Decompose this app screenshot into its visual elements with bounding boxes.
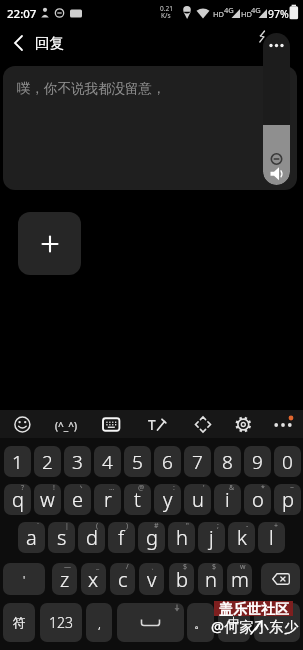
staticText: p <box>282 486 294 513</box>
button[interactable] <box>261 563 300 595</box>
staticText: 。 <box>194 615 207 631</box>
button[interactable]: q <box>4 484 31 515</box>
button[interactable]: a <box>18 522 45 553</box>
staticText: 7 <box>192 449 203 475</box>
button[interactable]: 3 <box>64 446 91 477</box>
staticText: h <box>176 524 188 551</box>
button[interactable] <box>18 212 81 275</box>
staticText: y <box>163 486 173 513</box>
staticText: , <box>98 614 101 632</box>
staticText: 0 <box>282 449 293 475</box>
button[interactable]: 符 <box>3 603 35 642</box>
button[interactable]: 6 <box>154 446 181 477</box>
staticText: 1 <box>12 449 23 475</box>
button[interactable]: u <box>184 484 211 515</box>
button[interactable]: k <box>228 522 255 553</box>
staticText: " <box>186 522 189 531</box>
button[interactable]: 噗，你不说我都没留意， <box>3 66 297 190</box>
button[interactable]: 中 <box>218 603 250 642</box>
button[interactable]: 2 <box>34 446 61 477</box>
staticText: j <box>209 524 214 551</box>
button[interactable]: b <box>169 563 194 595</box>
staticText: d <box>86 524 98 551</box>
staticText: 噗，你不说我都没留意， <box>17 80 166 97</box>
staticText: & <box>229 484 235 493</box>
button[interactable]: 。 <box>187 603 214 642</box>
staticText: ! <box>53 484 55 493</box>
staticText: l <box>269 524 274 551</box>
staticText: # <box>154 522 159 531</box>
button[interactable]: o <box>244 484 271 515</box>
button[interactable]: 9 <box>244 446 271 477</box>
button[interactable]: 0 <box>274 446 301 477</box>
staticText: - <box>246 522 249 531</box>
button[interactable] <box>268 410 298 438</box>
button[interactable] <box>228 410 258 438</box>
staticText: x <box>88 566 99 593</box>
button[interactable]: 7 <box>184 446 211 477</box>
staticText: z <box>60 566 70 593</box>
button[interactable]: c <box>110 563 135 595</box>
staticText: ' <box>203 484 205 493</box>
staticText: 4G <box>251 5 261 15</box>
staticText: HD <box>213 9 225 19</box>
button[interactable]: 1 <box>4 446 31 477</box>
staticText: K/s <box>161 11 171 20</box>
button[interactable]: n <box>198 563 223 595</box>
staticText: 3 <box>72 449 83 475</box>
staticText: ? <box>21 484 25 493</box>
staticText: ~ <box>290 484 295 493</box>
button[interactable]: m <box>227 563 252 595</box>
staticText: 盖乐世社区 <box>219 601 289 616</box>
staticText: u <box>192 486 204 513</box>
staticText: v <box>147 566 157 593</box>
staticText: w <box>40 486 55 513</box>
staticText: 97% <box>268 7 289 21</box>
button[interactable]: e <box>64 484 91 515</box>
staticText: / <box>126 563 129 572</box>
button[interactable]: r <box>94 484 121 515</box>
staticText: @ <box>138 484 145 493</box>
button[interactable]: f <box>108 522 135 553</box>
staticText: b <box>176 566 188 593</box>
button[interactable]: l <box>258 522 285 553</box>
staticText: f <box>118 524 125 551</box>
button[interactable]: g <box>138 522 165 553</box>
button[interactable]: p <box>274 484 301 515</box>
button[interactable]: x <box>81 563 106 595</box>
button[interactable]: s <box>48 522 75 553</box>
button[interactable] <box>117 603 184 642</box>
staticText: a <box>26 524 37 551</box>
button[interactable]: 123 <box>40 603 82 642</box>
button[interactable] <box>141 410 171 438</box>
button[interactable] <box>188 410 218 438</box>
button[interactable]: , <box>86 603 112 642</box>
button[interactable]: ' <box>3 563 45 595</box>
staticText: + <box>274 522 279 531</box>
staticText: r <box>104 486 112 513</box>
staticText: ) <box>126 522 129 531</box>
button[interactable]: i <box>214 484 241 515</box>
staticText: ( <box>96 522 99 531</box>
staticText: T <box>148 416 156 434</box>
button[interactable]: 8 <box>214 446 241 477</box>
button[interactable]: 5 <box>124 446 151 477</box>
button[interactable]: d <box>78 522 105 553</box>
button[interactable] <box>4 30 32 56</box>
button[interactable] <box>51 410 81 438</box>
button[interactable] <box>263 33 290 185</box>
button[interactable]: h <box>168 522 195 553</box>
button[interactable]: w <box>34 484 61 515</box>
button[interactable]: 4 <box>94 446 121 477</box>
button[interactable] <box>254 603 300 642</box>
staticText: t <box>134 486 141 513</box>
button[interactable] <box>96 410 126 438</box>
staticText: 、 <box>151 563 158 571</box>
button[interactable]: j <box>198 522 225 553</box>
button[interactable]: v <box>139 563 164 595</box>
button[interactable]: z <box>52 563 77 595</box>
button[interactable]: t <box>124 484 151 515</box>
button[interactable] <box>7 410 37 438</box>
button[interactable]: y <box>154 484 181 515</box>
staticText: : <box>173 484 175 493</box>
